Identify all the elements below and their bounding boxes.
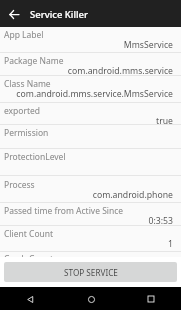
button[interactable]: Navigate up — [0, 0, 28, 27]
staticText: Process — [4, 179, 35, 191]
button[interactable]: Back — [19, 288, 41, 310]
staticText: MmsService — [123, 39, 173, 51]
staticText: Crash Count — [4, 253, 54, 257]
staticText: STOP SERVICE — [64, 267, 118, 278]
staticText: com.android.mms.service.MmsService — [16, 88, 173, 100]
staticText: ProtectionLevel — [4, 151, 66, 163]
button[interactable]: Recent apps — [140, 288, 162, 310]
staticText: exported — [4, 105, 41, 117]
button[interactable]: Client Count — [0, 226, 181, 252]
staticText: Permission — [4, 127, 49, 139]
button[interactable]: ProtectionLevel — [0, 149, 181, 176]
staticText: Client Count — [4, 228, 54, 240]
button[interactable]: Passed time from Active Since — [0, 203, 181, 226]
button[interactable]: Crash Count — [0, 252, 181, 257]
staticText: com.android.phone — [92, 189, 173, 201]
button[interactable]: exported — [0, 103, 181, 125]
staticText: 1 — [168, 238, 173, 250]
staticText: 0:3:53 — [148, 215, 173, 226]
staticText: Class Name — [4, 78, 51, 90]
staticText: true — [156, 115, 173, 125]
staticText: Package Name — [4, 55, 64, 67]
button[interactable]: Package Name — [0, 53, 181, 76]
button[interactable]: Permission — [0, 125, 181, 149]
button[interactable]: Process — [0, 176, 181, 203]
button[interactable]: Home — [80, 288, 102, 310]
staticText: com.android.mms.service — [67, 65, 173, 76]
staticText: App Label — [4, 29, 44, 41]
staticText: Passed time from Active Since — [4, 205, 124, 217]
button[interactable]: Class Name — [0, 76, 181, 103]
staticText: Service Killer — [30, 8, 89, 21]
button[interactable]: STOP SERVICE — [4, 262, 177, 282]
button[interactable]: App Label — [0, 27, 181, 53]
